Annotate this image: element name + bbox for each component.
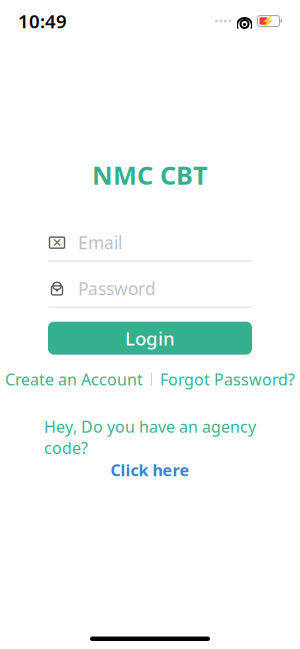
staticText: ⚡ xyxy=(261,15,274,27)
staticText: Login xyxy=(125,326,175,350)
staticText: Forgot Password? xyxy=(160,369,295,390)
staticText: Hey, Do you have an agency code? xyxy=(44,416,256,458)
staticText: Create an Account xyxy=(5,369,143,390)
staticText: Email xyxy=(78,231,122,254)
button[interactable]: Forgot Password? xyxy=(160,369,295,390)
button[interactable]: Hey, Do you have an agency code? xyxy=(24,416,276,481)
button[interactable]: Create an Account xyxy=(5,369,143,390)
staticText: 10:49 xyxy=(18,9,67,33)
staticText: NMC CBT xyxy=(92,158,208,192)
staticText: ✕ xyxy=(52,236,62,249)
button[interactable]: Login xyxy=(48,322,252,355)
staticText: Password xyxy=(78,277,156,300)
staticText: Click here xyxy=(110,459,189,481)
